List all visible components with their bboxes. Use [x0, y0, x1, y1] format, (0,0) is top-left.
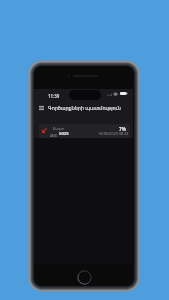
staticText: 11:39 [48, 93, 60, 99]
staticText: Քարտ [53, 127, 65, 131]
staticText: AMD [50, 133, 59, 137]
staticText: 16/05/2023 08:32 [98, 131, 129, 136]
button[interactable]: Menu [37, 104, 45, 112]
staticText: 7% [119, 126, 126, 132]
button[interactable]: Քարտ [39, 124, 130, 138]
staticText: 5025 [59, 131, 69, 137]
staticText: Գործարքների պատմություն [48, 105, 121, 112]
